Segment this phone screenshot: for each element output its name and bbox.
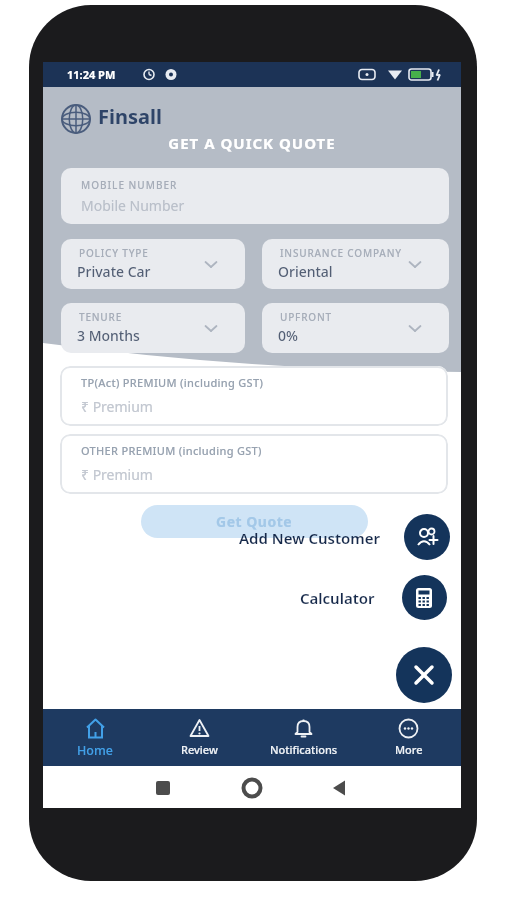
button[interactable] (402, 575, 447, 620)
staticText: Calculator (300, 588, 375, 608)
staticText: Oriental (278, 262, 333, 281)
button[interactable]: Review (147, 709, 251, 766)
button[interactable]: Get Quote (141, 505, 368, 538)
staticText: GET A QUICK QUOTE (43, 133, 461, 153)
staticText: UPFRONT (280, 310, 332, 324)
staticText: Finsall (98, 103, 162, 130)
button[interactable] (396, 647, 452, 703)
staticText: 0% (278, 326, 298, 345)
staticText: MOBILE NUMBER (81, 178, 178, 192)
button[interactable]: MOBILE NUMBER (61, 168, 449, 224)
button[interactable]: More (356, 709, 461, 766)
button[interactable] (404, 514, 450, 560)
staticText: TP(Act) PREMIUM (including GST) (81, 375, 264, 390)
button[interactable]: TENURE (61, 303, 245, 353)
button[interactable]: OTHER PREMIUM (including GST) (60, 434, 448, 494)
staticText: Review (181, 742, 218, 757)
staticText: ₹ Premium (81, 465, 153, 484)
staticText: Get Quote (216, 512, 293, 531)
button[interactable]: POLICY TYPE (61, 239, 245, 289)
staticText: TENURE (79, 310, 123, 324)
staticText: 3 Months (77, 326, 140, 345)
staticText: Private Car (77, 262, 151, 281)
button[interactable]: Notifications (251, 709, 356, 766)
button[interactable]: UPFRONT (262, 303, 449, 353)
staticText: Mobile Number (81, 196, 185, 215)
staticText: POLICY TYPE (79, 246, 149, 260)
staticText: OTHER PREMIUM (including GST) (81, 443, 262, 458)
staticText: INSURANCE COMPANY (280, 246, 402, 260)
staticText: Notifications (270, 742, 338, 757)
staticText: 11:24 PM (67, 67, 116, 82)
staticText: Home (77, 742, 114, 759)
staticText: ₹ Premium (81, 397, 153, 416)
button[interactable]: Home (43, 709, 147, 766)
staticText: More (395, 742, 423, 757)
button[interactable]: TP(Act) PREMIUM (including GST) (60, 366, 448, 426)
button[interactable]: INSURANCE COMPANY (262, 239, 449, 289)
staticText: Add New Customer (239, 528, 381, 548)
